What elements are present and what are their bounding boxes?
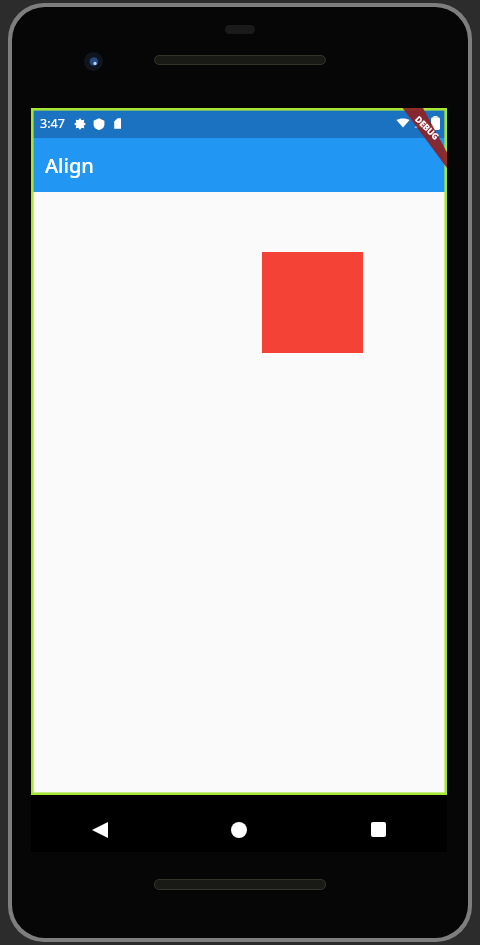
button[interactable]: Home xyxy=(216,807,262,852)
staticText: 3:47 xyxy=(40,115,65,132)
staticText: Align xyxy=(45,152,94,179)
staticText: DEBUG xyxy=(412,113,442,143)
button[interactable]: Back xyxy=(77,807,123,852)
button[interactable]: Recent apps xyxy=(355,807,401,852)
